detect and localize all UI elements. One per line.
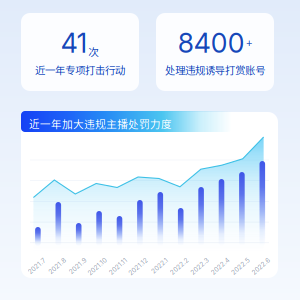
staticText: 近一年专项打击行动 (35, 62, 125, 77)
staticText: 8400 (178, 27, 245, 59)
button[interactable]: 8400 (156, 13, 274, 91)
staticText: 近一年加大违规主播处罚力度 (29, 116, 172, 131)
staticText: 2021.8 (44, 255, 65, 263)
staticText: 次 (88, 44, 99, 59)
staticText: 2022.4 (206, 255, 228, 263)
staticText: + (246, 35, 252, 50)
staticText: 处理违规诱导打赏账号 (165, 62, 265, 77)
button[interactable]: 41 (21, 13, 139, 91)
staticText: 2022.5 (227, 255, 249, 263)
staticText: 2022.1 (147, 255, 167, 263)
staticText: 2021.7 (24, 255, 45, 263)
staticText: 2022.3 (186, 255, 208, 263)
staticText: 2022.2 (166, 255, 188, 263)
staticText: 2021.9 (65, 255, 86, 263)
staticText: 2021.10 (83, 255, 106, 263)
staticText: 2022.6 (247, 255, 269, 263)
staticText: 2021.11 (104, 255, 126, 263)
staticText: 2021.12 (124, 255, 147, 263)
staticText: 41 (61, 27, 87, 59)
